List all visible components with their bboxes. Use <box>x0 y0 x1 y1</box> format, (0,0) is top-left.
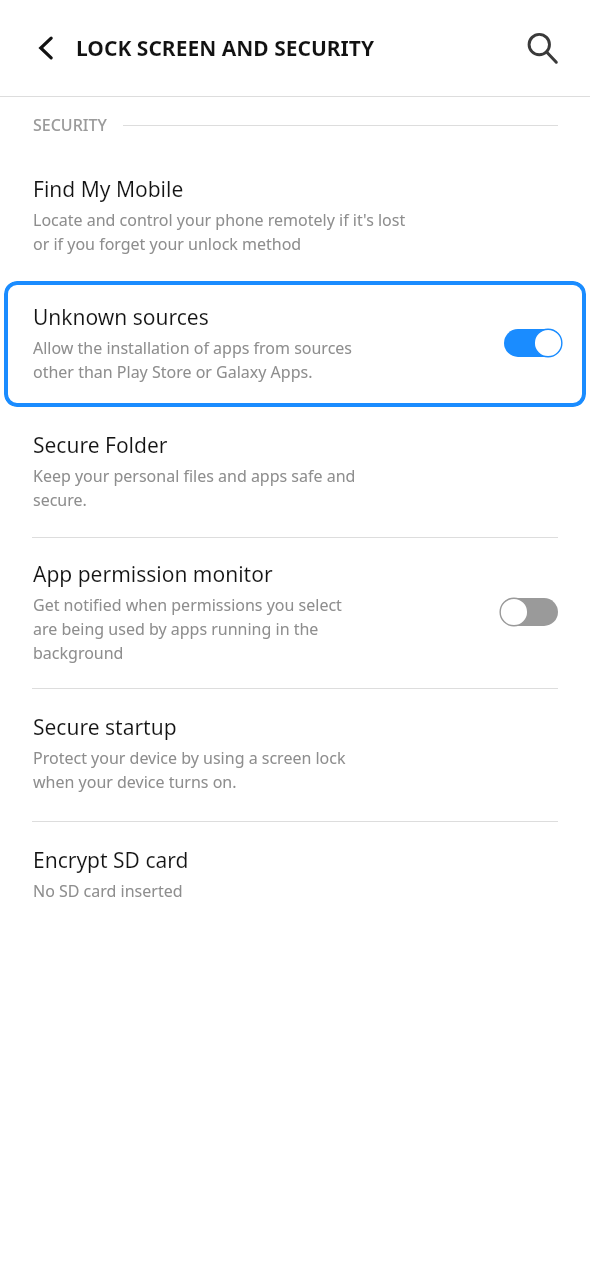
staticText: LOCK SCREEN AND SECURITY <box>76 34 375 63</box>
staticText: Encrypt SD card <box>33 846 189 875</box>
button[interactable]: Secure startup <box>0 689 590 821</box>
button[interactable]: Find My Mobile <box>0 153 590 277</box>
staticText: Protect your device by using a screen lo… <box>33 747 346 793</box>
staticText: SECURITY <box>33 114 107 136</box>
staticText: App permission monitor <box>33 560 273 589</box>
button[interactable]: App permission monitor <box>0 538 590 688</box>
staticText: Secure Folder <box>33 431 168 460</box>
staticText: Locate and control your phone remotely i… <box>33 209 406 255</box>
button[interactable]: Search <box>516 22 568 74</box>
button[interactable]: Unknown sources <box>4 281 586 407</box>
button[interactable]: Toggle off <box>500 597 558 627</box>
staticText: Allow the installation of apps from sour… <box>33 337 353 383</box>
button[interactable]: Toggle on <box>504 328 562 358</box>
staticText: Unknown sources <box>33 303 209 332</box>
staticText: Secure startup <box>33 713 177 742</box>
button[interactable]: Secure Folder <box>0 411 590 537</box>
staticText: Keep your personal files and apps safe a… <box>33 465 356 511</box>
button[interactable]: Back <box>22 23 72 73</box>
button[interactable]: Encrypt SD card <box>0 822 590 926</box>
staticText: Find My Mobile <box>33 175 184 204</box>
staticText: No SD card inserted <box>33 880 183 902</box>
staticText: Get notified when permissions you select… <box>33 594 342 664</box>
